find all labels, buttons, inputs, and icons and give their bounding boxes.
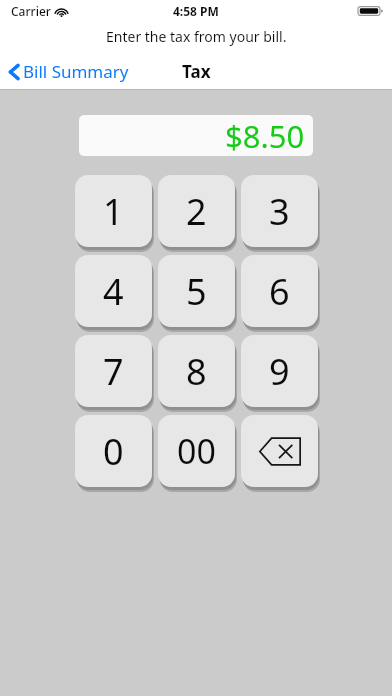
button[interactable]: 8 [158, 335, 235, 407]
button[interactable]: 5 [158, 255, 235, 327]
staticText: 1 [103, 187, 124, 236]
staticText: Bill Summary [23, 60, 129, 83]
button[interactable]: $8.50 [79, 115, 313, 156]
staticText: 7 [103, 347, 124, 396]
staticText: 3 [269, 187, 290, 236]
button[interactable]: 6 [241, 255, 318, 327]
button[interactable]: 1 [75, 175, 152, 247]
staticText: Carrier [11, 3, 51, 19]
button[interactable]: 00 [158, 415, 235, 487]
button[interactable]: Bill Summary [0, 58, 137, 85]
staticText: 8 [186, 347, 207, 396]
button[interactable]: Backspace [241, 415, 318, 487]
staticText: 6 [269, 267, 290, 316]
staticText: 5 [186, 267, 207, 316]
button[interactable]: 0 [75, 415, 152, 487]
staticText: Enter the tax from your bill. [106, 27, 287, 46]
staticText: 4 [103, 267, 124, 316]
staticText: Tax [182, 60, 211, 83]
button[interactable]: 7 [75, 335, 152, 407]
button[interactable]: 4 [75, 255, 152, 327]
staticText: 9 [269, 347, 290, 396]
staticText: 2 [186, 187, 207, 236]
button[interactable]: 3 [241, 175, 318, 247]
staticText: 4:58 PM [173, 3, 219, 19]
button[interactable]: 9 [241, 335, 318, 407]
staticText: 0 [103, 427, 124, 476]
button[interactable]: 2 [158, 175, 235, 247]
staticText: $8.50 [225, 115, 305, 156]
staticText: 00 [177, 428, 216, 474]
